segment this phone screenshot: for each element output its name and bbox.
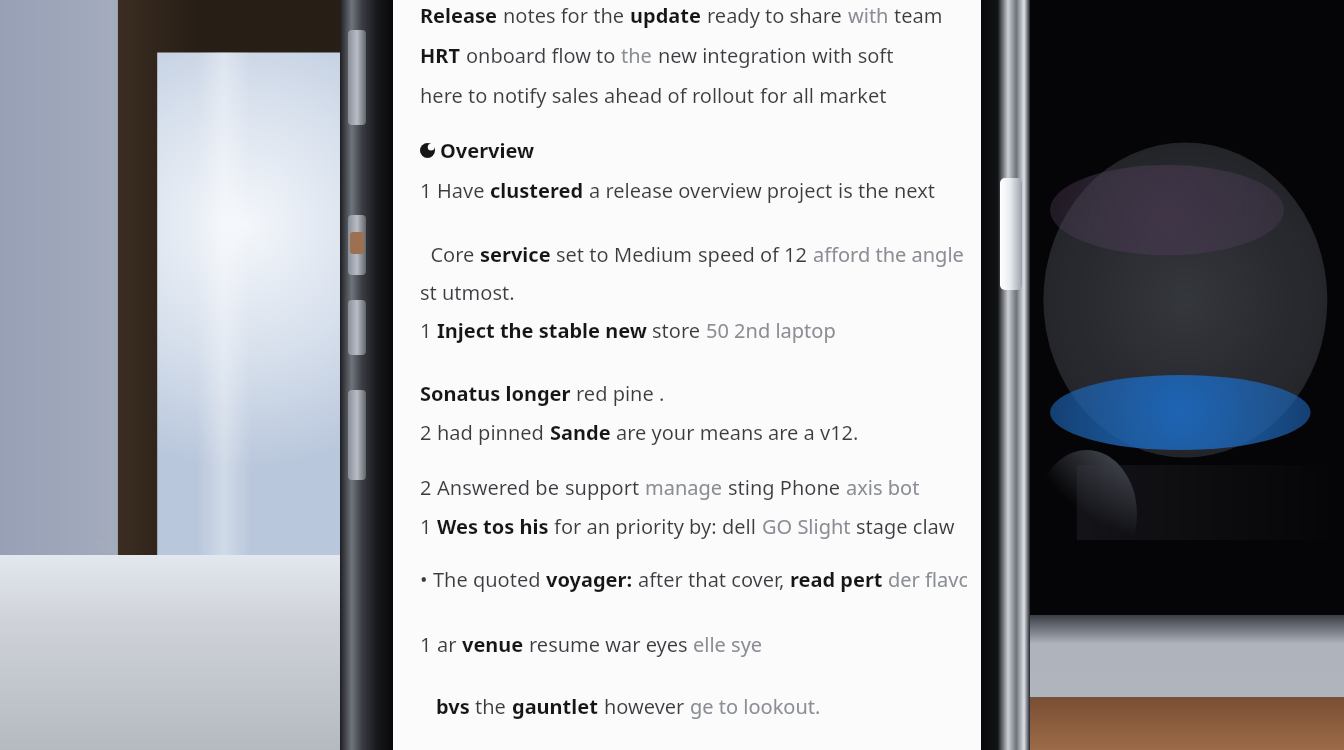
staticText: Medium <box>614 241 698 268</box>
staticText: • <box>420 566 433 593</box>
staticText: gauntlet <box>512 693 604 720</box>
staticText: dell <box>722 513 762 540</box>
staticText: rollout <box>692 82 760 109</box>
staticText: manage <box>645 474 728 501</box>
staticText: Answered be <box>437 474 565 501</box>
staticText: Sonatus longer <box>420 380 576 407</box>
button[interactable]: • <box>420 566 967 593</box>
staticText: notes for the <box>503 2 630 29</box>
button[interactable]: here <box>420 82 967 109</box>
staticText: onboard flow to <box>466 42 621 69</box>
staticText: service <box>480 241 556 268</box>
staticText: update <box>630 2 707 29</box>
button[interactable]: 2 <box>420 419 967 446</box>
staticText: to notify sales <box>468 82 604 109</box>
button[interactable]: Release <box>420 0 967 750</box>
button[interactable]: Section marker <box>420 137 967 164</box>
staticText: 1 <box>420 317 437 344</box>
staticText: resume war eyes <box>529 631 693 658</box>
staticText: for an priority by: <box>554 513 722 540</box>
staticText: 1 <box>420 177 437 204</box>
staticText: GO Slight <box>762 513 856 540</box>
staticText: read pert <box>790 566 888 593</box>
staticText: new integration <box>658 42 812 69</box>
button[interactable]: st utmost. <box>420 279 967 306</box>
button[interactable]: Release <box>420 2 967 29</box>
staticText: Sande <box>550 419 616 446</box>
button[interactable]: 1 <box>420 317 967 344</box>
staticText: HRT <box>420 42 466 69</box>
staticText: with <box>848 2 894 29</box>
staticText: Inject the stable new <box>437 317 652 344</box>
staticText: Have <box>437 177 490 204</box>
button[interactable]: Sonatus longer <box>420 380 967 407</box>
staticText: venue <box>462 631 529 658</box>
staticText: for all market <box>760 82 887 109</box>
staticText: Release <box>420 2 503 29</box>
button[interactable]: 1 <box>420 631 967 658</box>
button[interactable]: bvs <box>420 693 967 720</box>
staticText: ready to share <box>707 2 848 29</box>
button[interactable]: 1 <box>420 177 967 204</box>
staticText: set to <box>556 241 614 268</box>
staticText: are your means are a v12. <box>616 419 859 446</box>
staticText: sting Phone <box>728 474 846 501</box>
staticText: 1 <box>420 513 437 540</box>
staticText: Wes tos his <box>437 513 554 540</box>
staticText: elle sye <box>693 631 763 658</box>
staticText: the <box>621 42 658 69</box>
staticText: here <box>420 82 468 109</box>
staticText: after that cover, <box>638 566 790 593</box>
button[interactable]: 2 <box>420 474 967 501</box>
staticText: bvs <box>436 693 475 720</box>
staticText: red pine . <box>576 380 665 407</box>
button[interactable]: bvs <box>436 693 967 720</box>
staticText: st utmost. <box>420 279 515 306</box>
staticText: is the next <box>838 177 936 204</box>
staticText: Core <box>420 241 480 268</box>
button[interactable]: 1 <box>420 513 967 540</box>
staticText: with soft <box>812 42 894 69</box>
staticText: however <box>604 693 690 720</box>
staticText: had pinned <box>437 419 550 446</box>
staticText: a release overview project <box>589 177 838 204</box>
staticText: the <box>475 693 512 720</box>
staticText: afford the angle <box>813 241 964 268</box>
staticText: axis bot <box>846 474 920 501</box>
staticText: stage claw <box>856 513 955 540</box>
staticText: Overview <box>440 137 535 164</box>
staticText: ar <box>437 631 462 658</box>
button[interactable]: HRT <box>420 42 967 69</box>
staticText: 2 <box>420 419 437 446</box>
staticText: 1 <box>420 631 437 658</box>
staticText: 2 <box>420 474 437 501</box>
staticText: ahead of <box>604 82 692 109</box>
staticText: 50 2nd laptop <box>706 317 836 344</box>
staticText: voyager: <box>546 566 638 593</box>
staticText: ge to lookout. <box>690 693 821 720</box>
staticText: team <box>894 2 943 29</box>
staticText: The quoted <box>433 566 546 593</box>
staticText: clustered <box>490 177 589 204</box>
staticText: der flavor <box>888 566 967 593</box>
button[interactable]: The quoted <box>433 566 967 593</box>
staticText: speed of 12 <box>698 241 813 268</box>
staticText: store <box>652 317 706 344</box>
button[interactable]: Core <box>420 241 967 268</box>
staticText: support <box>565 474 645 501</box>
other: Section marker <box>420 143 435 158</box>
